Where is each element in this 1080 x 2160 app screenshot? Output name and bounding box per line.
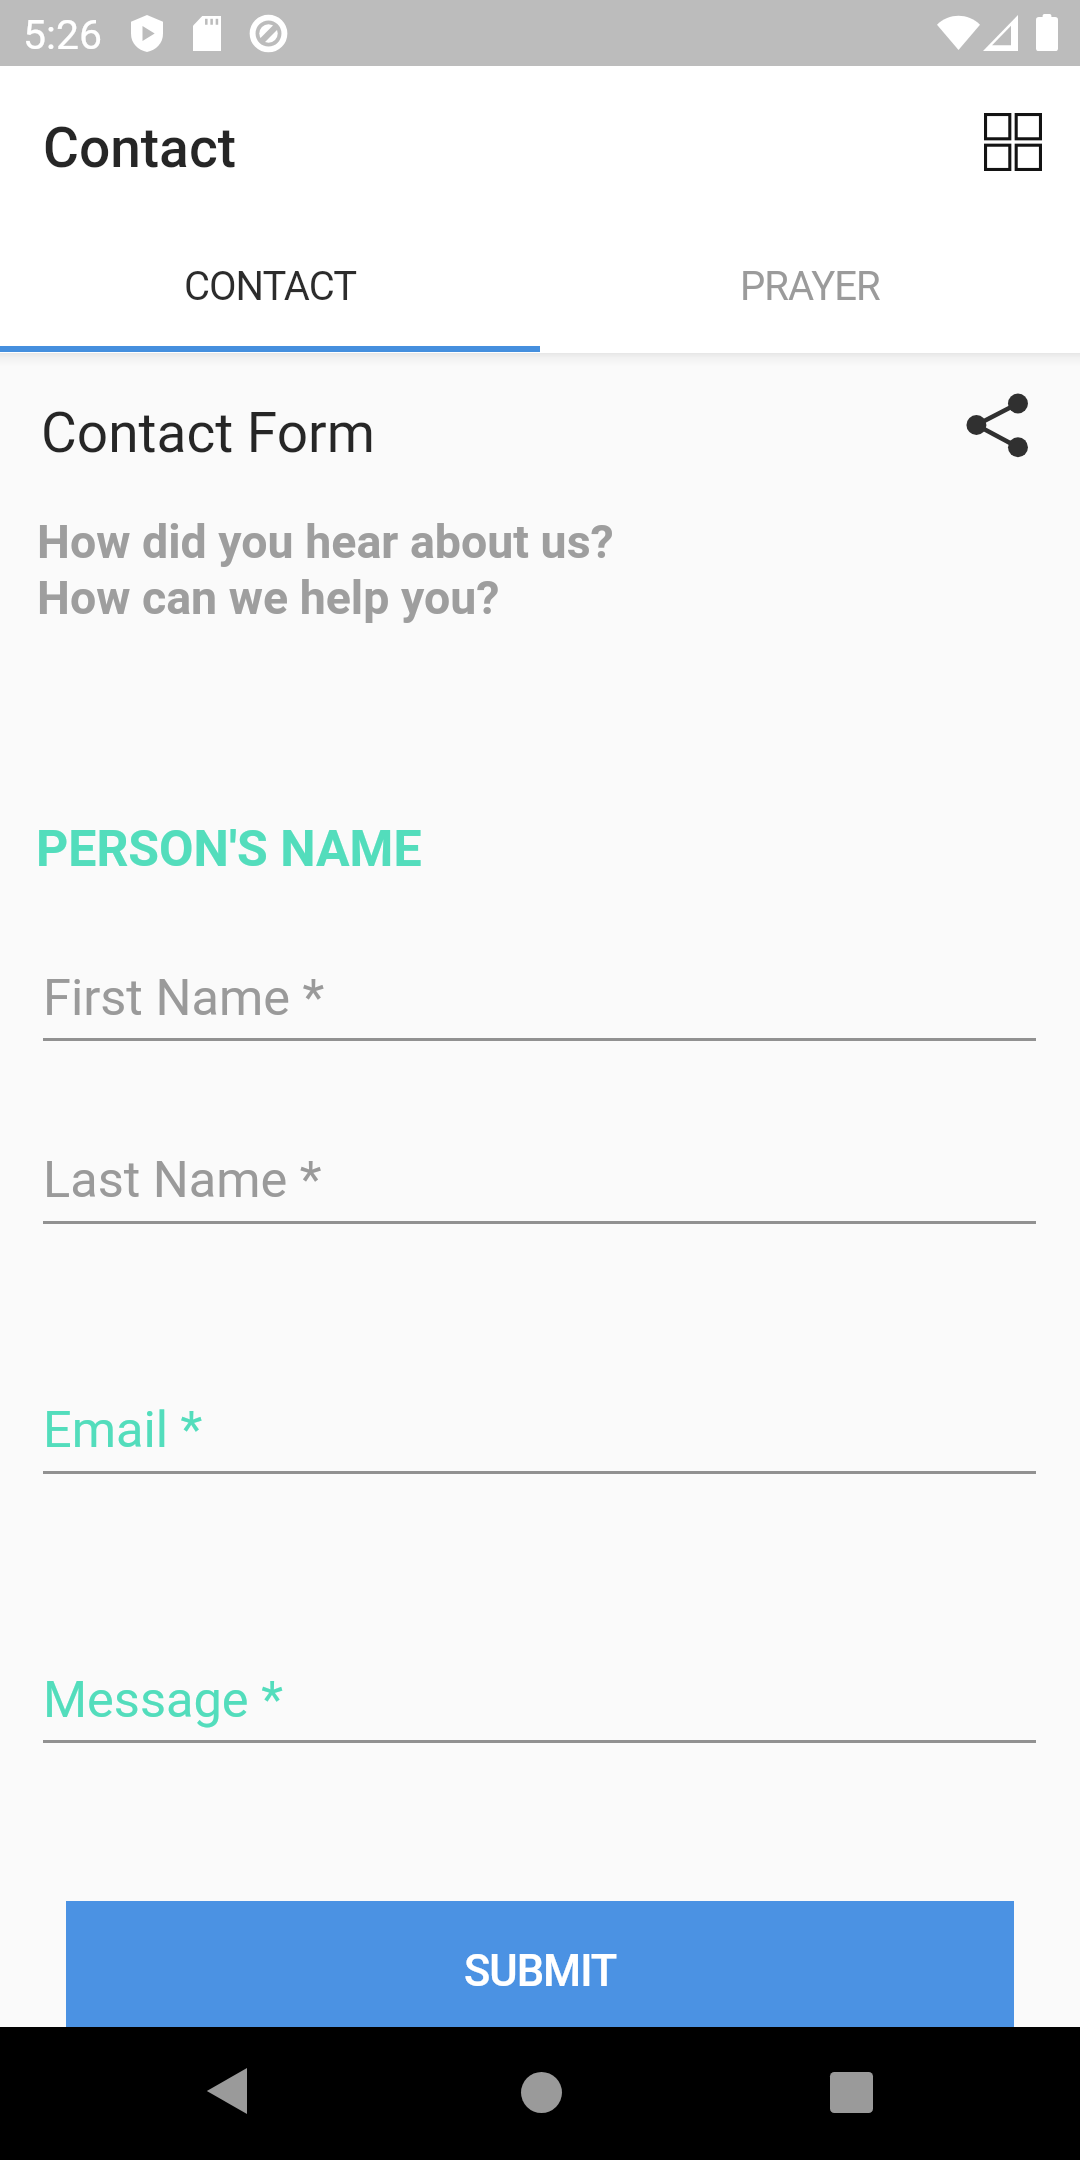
staticText: PRAYER [740, 263, 880, 310]
staticText: CONTACT [184, 263, 357, 310]
button[interactable]: Home [501, 2059, 581, 2125]
button[interactable]: PRAYER [540, 227, 1080, 346]
button[interactable]: Recent apps [811, 2060, 891, 2124]
button[interactable]: SUBMIT [66, 1901, 1014, 2042]
staticText: PERSON'S NAME [36, 820, 422, 879]
button[interactable]: CONTACT [0, 227, 540, 346]
button[interactable]: Share [952, 379, 1044, 471]
staticText: How did you hear about us? How can we he… [37, 514, 614, 626]
staticText: 5:26 [23, 11, 103, 59]
staticText: SUBMIT [464, 1946, 617, 1997]
button[interactable]: Back [186, 2056, 266, 2126]
button[interactable]: Grid view [958, 87, 1068, 197]
staticText: Email * [43, 1400, 203, 1459]
staticText: Contact Form [41, 401, 375, 465]
staticText: Last Name * [43, 1150, 322, 1209]
staticText: First Name * [43, 968, 325, 1027]
staticText: Message * [43, 1670, 283, 1729]
staticText: Contact [43, 116, 237, 180]
